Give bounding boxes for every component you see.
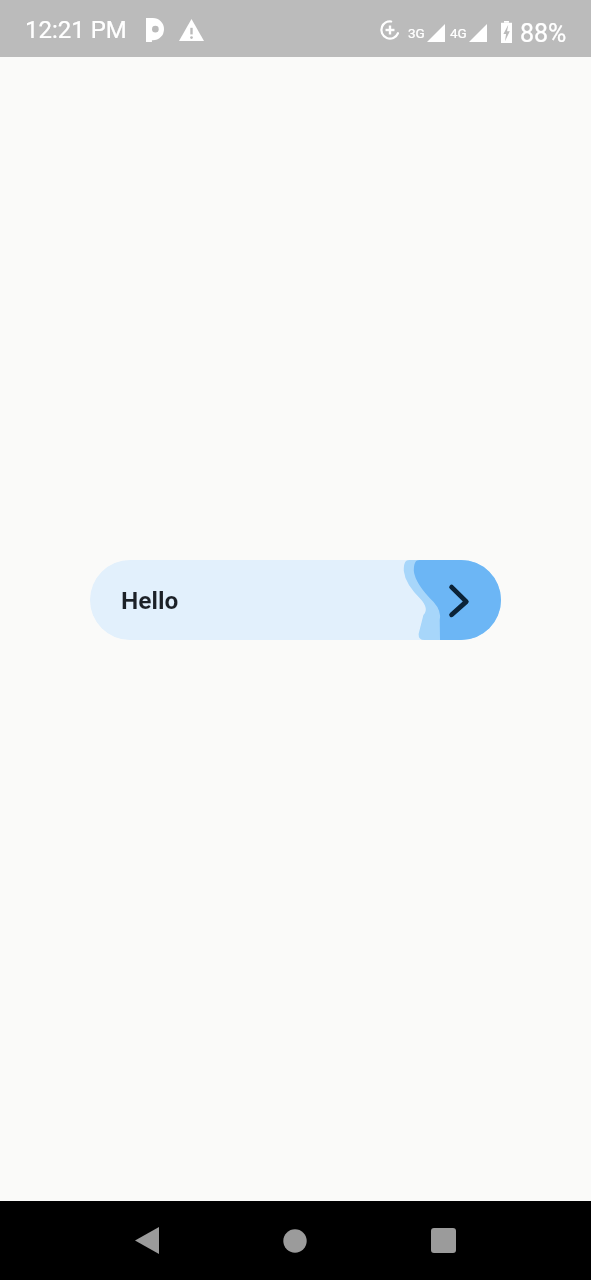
button[interactable]: Home bbox=[270, 1216, 319, 1265]
staticText: 12:21 PM bbox=[25, 16, 127, 44]
button[interactable]: Recent apps bbox=[419, 1216, 468, 1265]
staticText: Hello bbox=[121, 586, 179, 615]
button[interactable]: Back bbox=[122, 1216, 171, 1265]
staticText: 4G bbox=[450, 25, 467, 41]
staticText: 88% bbox=[520, 19, 567, 48]
staticText: 3G bbox=[408, 25, 425, 41]
button[interactable]: Hello bbox=[90, 560, 501, 640]
button[interactable]: Continue bbox=[381, 560, 501, 640]
